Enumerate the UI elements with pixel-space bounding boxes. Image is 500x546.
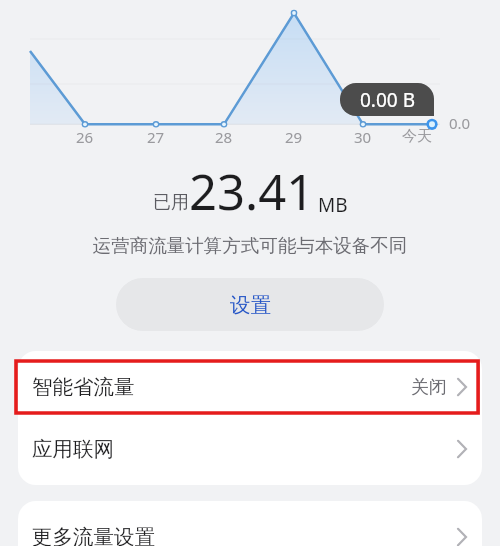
staticText: 27 <box>147 127 165 147</box>
staticText: 23.41 <box>189 158 315 225</box>
staticText: 设置 <box>230 292 271 318</box>
button[interactable]: 设置 <box>116 278 384 331</box>
staticText: 更多流量设置 <box>32 524 155 546</box>
staticText: 28 <box>215 127 233 147</box>
staticText: MB <box>318 192 348 218</box>
button[interactable]: 应用联网 <box>18 418 482 480</box>
staticText: 0.0 <box>449 113 471 133</box>
staticText: 30 <box>354 127 372 147</box>
staticText: 应用联网 <box>32 436 114 462</box>
staticText: 0.00 B <box>360 87 415 113</box>
staticText: 关闭 <box>411 376 447 399</box>
other: Usage tooltip <box>340 83 434 116</box>
staticText: 今天 <box>402 127 432 146</box>
button[interactable]: 智能省流量 <box>18 356 482 418</box>
staticText: 已用 <box>153 191 189 214</box>
button[interactable]: 更多流量设置 <box>18 506 482 546</box>
staticText: 智能省流量 <box>32 374 135 400</box>
staticText: 26 <box>76 127 94 147</box>
staticText: 29 <box>285 127 303 147</box>
staticText: 运营商流量计算方式可能与本设备不同 <box>0 234 500 257</box>
